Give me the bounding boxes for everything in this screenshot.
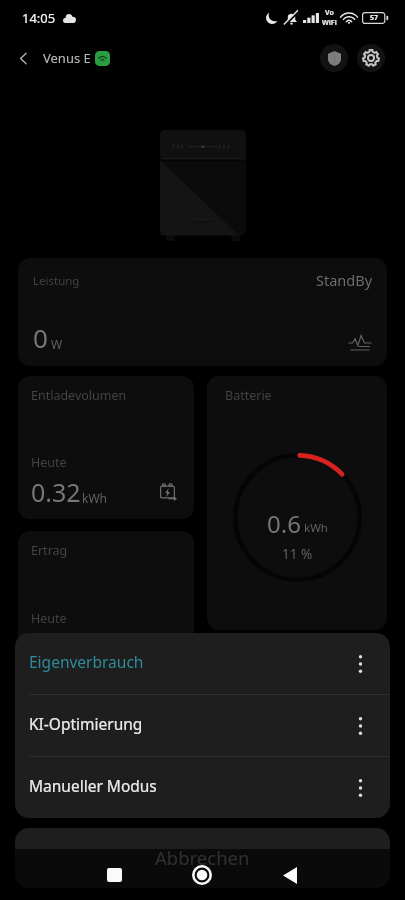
other: Discharge — [160, 482, 177, 501]
staticText: W — [51, 336, 63, 352]
button[interactable]: More options — [350, 654, 370, 674]
button[interactable]: Leistung — [18, 258, 387, 366]
staticText: 14:05 — [22, 9, 56, 27]
staticText: StandBy — [316, 270, 373, 290]
button[interactable]: More options — [350, 778, 370, 798]
button[interactable]: Ertrag — [18, 531, 194, 674]
other: History — [349, 335, 371, 351]
button[interactable]: Manueller Modus — [15, 757, 390, 818]
button[interactable]: Home — [184, 857, 220, 893]
button[interactable]: Back — [9, 44, 37, 72]
button[interactable]: Connected — [95, 51, 110, 66]
staticText: Heute — [31, 454, 67, 471]
staticText: Vo — [325, 8, 334, 18]
staticText: 0.6 — [267, 507, 301, 540]
staticText: Batterie — [225, 387, 272, 404]
button[interactable]: Entladevolumen — [18, 376, 194, 519]
staticText: 0.32 — [31, 475, 81, 509]
staticText: Entladevolumen — [31, 387, 127, 404]
staticText: Venus E — [43, 49, 91, 67]
staticText: Heute — [31, 610, 67, 627]
button[interactable]: Abbrechen — [15, 828, 390, 888]
button[interactable]: Settings — [357, 44, 385, 72]
staticText: Eigenverbrauch — [29, 651, 144, 672]
staticText: Abbrechen — [155, 845, 250, 870]
staticText: 57 — [370, 13, 379, 23]
staticText: Ertrag — [31, 542, 68, 559]
staticText: KI-Optimierung — [29, 713, 143, 734]
button[interactable]: Batterie — [207, 376, 387, 630]
staticText: kWh — [304, 520, 328, 536]
button[interactable]: Eigenverbrauch — [15, 633, 390, 694]
button[interactable]: Back — [272, 857, 308, 893]
button[interactable]: More options — [350, 716, 370, 736]
staticText: WiFi — [322, 18, 337, 28]
staticText: Manueller Modus — [29, 775, 157, 796]
button[interactable]: Security — [320, 44, 348, 72]
button[interactable]: Recents — [96, 857, 132, 893]
staticText: Leistung — [33, 273, 80, 289]
button[interactable]: KI-Optimierung — [15, 695, 390, 756]
staticText: 0 — [33, 320, 48, 355]
staticText: 11 % — [282, 545, 313, 563]
staticText: kWh — [82, 490, 107, 506]
